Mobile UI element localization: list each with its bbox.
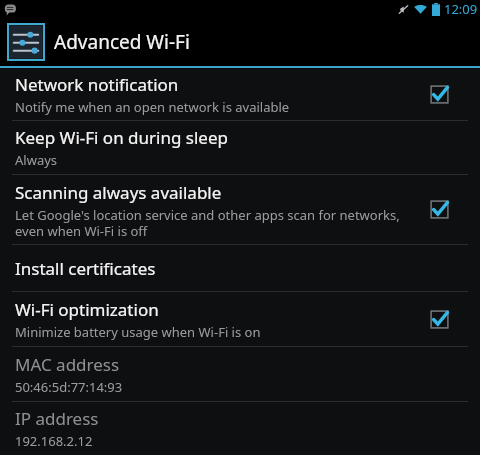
staticText: Install certificates [15,257,156,280]
other: Advanced Wi-Fi settings [8,24,44,60]
staticText: Wi-Fi optimization [15,298,159,321]
staticText: IP address [15,407,99,430]
staticText: 12:09 [444,0,478,18]
staticText: Minimize battery usage when Wi-Fi is on [15,323,261,341]
staticText: Always [15,151,58,169]
button[interactable]: Toggle [429,199,450,220]
button[interactable]: Network notification [0,68,480,120]
button[interactable]: Advanced Wi-Fi settings [0,18,480,66]
button[interactable]: Wi-Fi optimization [0,292,480,346]
staticText: 192.168.2.12 [15,432,93,450]
button[interactable]: Install certificates [0,245,480,291]
staticText: Advanced Wi-Fi [54,29,190,55]
button[interactable]: IP address [0,402,480,455]
staticText: MAC address [15,353,120,376]
staticText: Network notification [15,73,179,96]
button[interactable]: Keep Wi-Fi on during sleep [0,121,480,174]
staticText: Let Google's location service and other … [15,206,421,239]
button[interactable]: Toggle [429,309,450,330]
staticText: Scanning always available [15,181,222,204]
staticText: 50:46:5d:77:14:93 [15,378,123,396]
staticText: Keep Wi-Fi on during sleep [15,126,228,149]
button[interactable]: Scanning always available [0,175,480,244]
button[interactable]: Toggle [429,84,450,105]
button[interactable]: MAC address [0,347,480,401]
staticText: Notify me when an open network is availa… [15,98,290,116]
